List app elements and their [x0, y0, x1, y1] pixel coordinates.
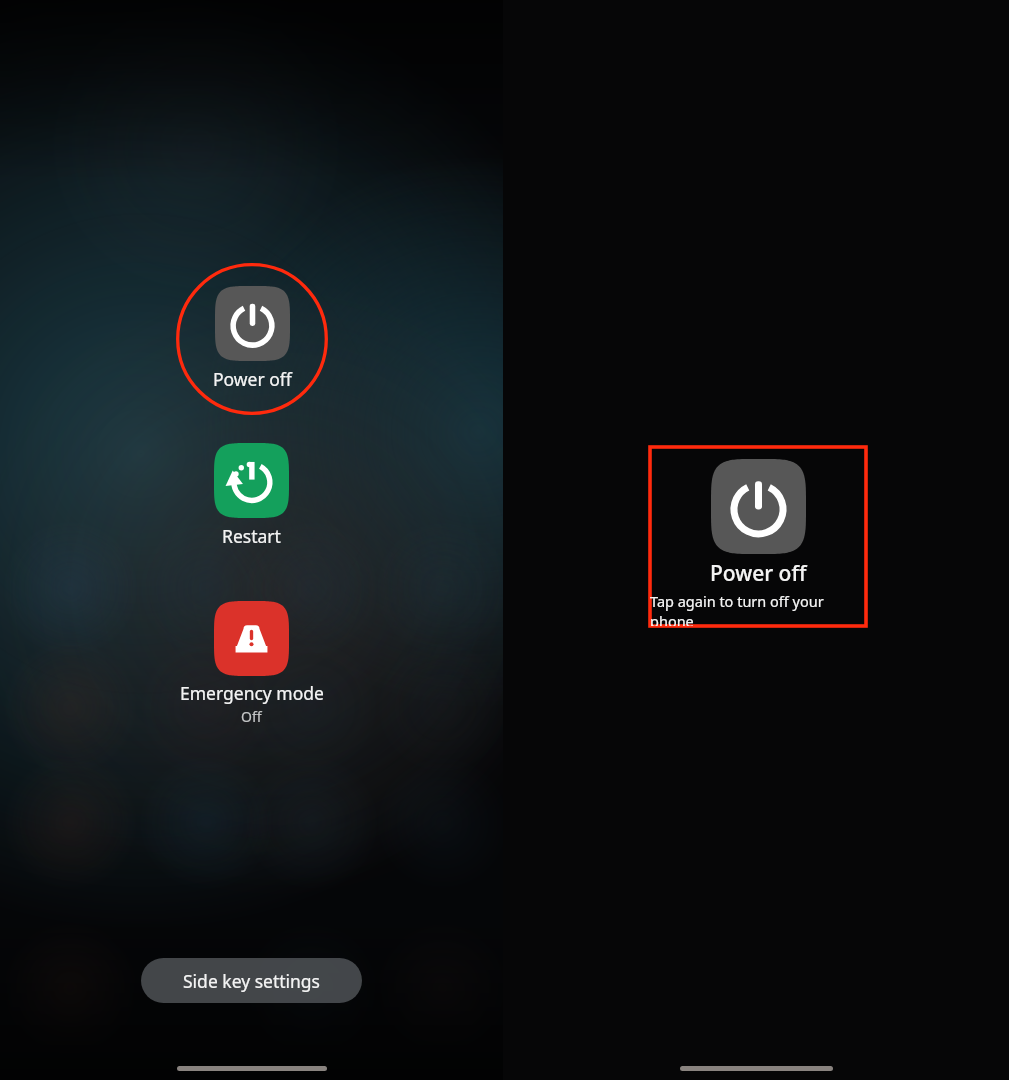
staticText: Power off	[710, 559, 807, 588]
button[interactable]: Emergency mode	[166, 601, 337, 726]
button[interactable]: Power off	[176, 263, 328, 415]
staticText: Off	[241, 707, 262, 726]
button[interactable]: Power off, tap again to turn off your ph…	[650, 447, 866, 626]
staticText: Tap again to turn off your phone	[650, 591, 866, 626]
button[interactable]: Restart	[189, 443, 314, 548]
staticText: Restart	[222, 524, 281, 548]
button[interactable]: Side key settings	[141, 958, 362, 1003]
staticText: Emergency mode	[180, 681, 324, 705]
staticText: Side key settings	[183, 969, 321, 993]
staticText: Power off	[213, 367, 292, 391]
